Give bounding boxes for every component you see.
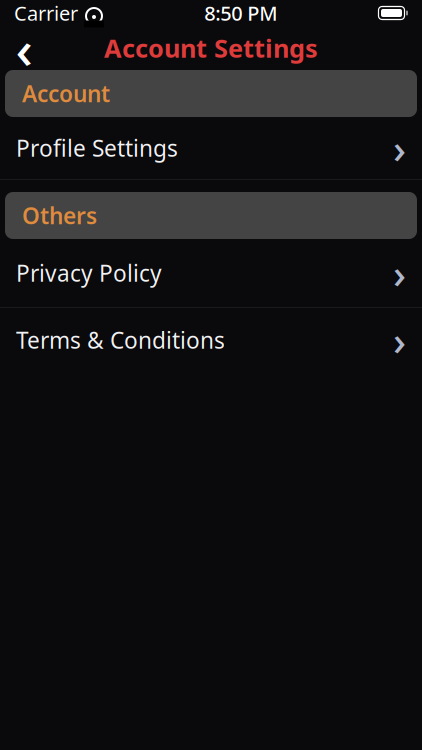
staticText: › <box>393 246 406 299</box>
staticText: › <box>393 313 406 366</box>
button[interactable]: Privacy Policy <box>0 239 422 307</box>
staticText: › <box>393 121 406 174</box>
button[interactable]: Terms & Conditions <box>0 308 422 372</box>
staticText: Carrier <box>14 0 78 26</box>
staticText: Profile Settings <box>16 133 178 163</box>
staticText: Privacy Policy <box>16 258 162 288</box>
staticText: ‹ <box>15 13 32 83</box>
button[interactable]: Profile Settings <box>0 117 422 179</box>
staticText: Terms & Conditions <box>16 325 225 355</box>
staticText: 8:50 PM <box>204 0 277 26</box>
button[interactable]: Back <box>0 26 48 70</box>
staticText: Others <box>22 200 97 230</box>
staticText: Account Settings <box>104 31 318 65</box>
staticText: Account <box>22 78 110 108</box>
